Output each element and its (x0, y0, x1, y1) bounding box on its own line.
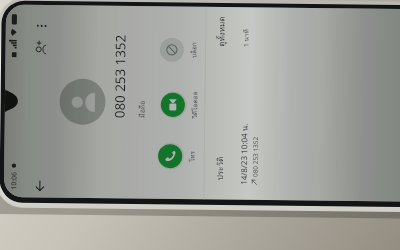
button[interactable]: Block number (160, 38, 186, 64)
button[interactable]: Call (158, 144, 184, 170)
button[interactable]: More options (30, 15, 54, 39)
button[interactable]: Add to contacts (30, 37, 54, 61)
button[interactable]: Video call (161, 93, 187, 119)
button[interactable]: Call history entry (232, 120, 268, 200)
button[interactable]: Back (30, 178, 54, 202)
